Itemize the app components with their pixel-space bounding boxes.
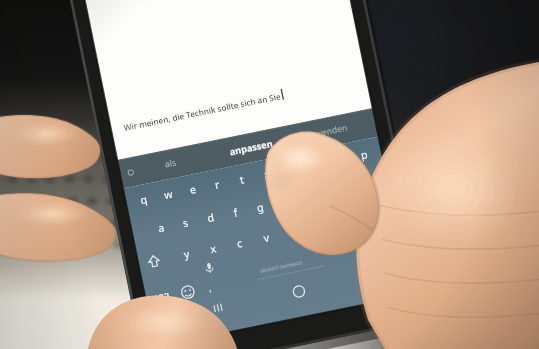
button[interactable]: Photo of a hand holding a phone showing … [0,0,539,349]
